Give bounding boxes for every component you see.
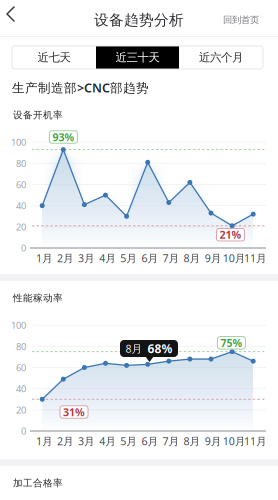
staticText: 40	[16, 382, 26, 395]
staticText: 93%	[52, 130, 74, 144]
staticText: 10月	[223, 251, 246, 265]
staticText: 11月	[244, 434, 267, 448]
staticText: 60	[16, 361, 26, 374]
staticText: 5月	[120, 434, 137, 448]
staticText: 0	[21, 425, 26, 437]
staticText: 3月	[78, 251, 95, 265]
staticText: 6月	[141, 251, 158, 265]
staticText: 8月	[184, 434, 201, 448]
staticText: 11月	[244, 251, 267, 265]
staticText: 3月	[78, 434, 95, 448]
staticText: 1月	[36, 434, 53, 448]
staticText: 生产制造部>CNC部趋势	[12, 79, 149, 96]
staticText: 7月	[162, 434, 179, 448]
staticText: 9月	[205, 434, 222, 448]
staticText: 4月	[99, 251, 116, 265]
staticText: 9月	[205, 251, 222, 265]
staticText: 2月	[57, 434, 74, 448]
staticText: 回到首页	[223, 14, 259, 26]
staticText: 近七天	[37, 50, 70, 65]
staticText: 0	[21, 242, 26, 254]
staticText: 21%	[219, 228, 241, 242]
staticText: 31%	[63, 405, 85, 419]
staticText: 4月	[99, 434, 116, 448]
button[interactable]: 近六个月	[179, 46, 263, 69]
staticText: 设备趋势分析	[94, 11, 184, 29]
staticText: 加工合格率	[13, 477, 63, 489]
staticText: 6月	[141, 434, 158, 448]
staticText: 1月	[36, 251, 53, 265]
staticText: 20	[16, 404, 26, 416]
staticText: 100	[11, 136, 26, 148]
staticText: 10月	[223, 434, 246, 448]
staticText: 近六个月	[199, 50, 243, 65]
staticText: 80	[16, 157, 26, 170]
button[interactable]: 近七天	[12, 46, 96, 69]
staticText: 性能稼动率	[13, 292, 63, 304]
staticText: 2月	[57, 251, 74, 265]
button[interactable]: 近三十天	[96, 46, 179, 69]
staticText: 40	[16, 199, 26, 212]
staticText: 75%	[220, 336, 242, 350]
staticText: 68%	[147, 340, 172, 356]
staticText: 100	[11, 319, 26, 331]
button[interactable]: 返回	[2, 4, 32, 38]
staticText: 7月	[162, 251, 179, 265]
staticText: 5月	[120, 251, 137, 265]
staticText: 8月	[184, 251, 201, 265]
button[interactable]: 回到首页	[219, 8, 263, 32]
staticText: 60	[16, 178, 26, 191]
staticText: 80	[16, 340, 26, 353]
staticText: 设备开机率	[13, 109, 63, 121]
staticText: 8月	[125, 341, 142, 356]
staticText: 近三十天	[115, 50, 159, 65]
staticText: 20	[16, 221, 26, 233]
